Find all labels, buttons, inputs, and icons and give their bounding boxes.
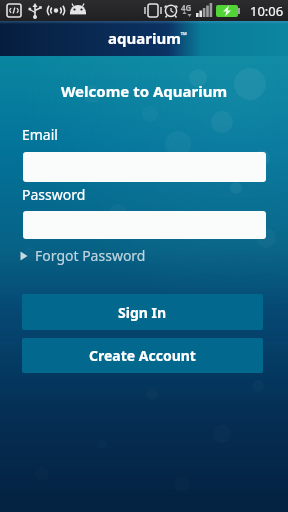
staticText: Create Account: [89, 346, 196, 365]
button[interactable]: [23, 152, 266, 182]
staticText: Email: [22, 125, 58, 144]
staticText: Sign In: [118, 303, 167, 322]
staticText: Welcome to Aquarium: [0, 81, 288, 101]
button[interactable]: Create Account: [22, 338, 263, 373]
staticText: Password: [22, 185, 86, 204]
button[interactable]: Forgot Password: [20, 246, 146, 265]
staticText: 10:06: [250, 2, 284, 20]
button[interactable]: [23, 211, 266, 239]
staticText: 4G: [181, 2, 192, 13]
staticText: Forgot Password: [35, 246, 146, 265]
staticText: aquarium™: [108, 28, 187, 48]
button[interactable]: Sign In: [22, 294, 263, 330]
